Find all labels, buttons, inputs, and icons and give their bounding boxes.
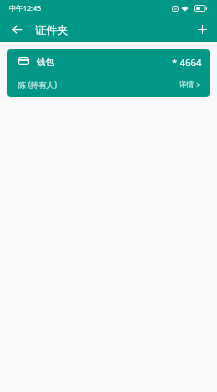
staticText: * 4664 [172, 56, 202, 69]
button[interactable]: Back [0, 17, 33, 42]
staticText: 证件夹 [35, 23, 68, 37]
button[interactable]: 详情 [179, 80, 200, 89]
button[interactable]: 钱包 [7, 49, 210, 97]
staticText: 钱包 [37, 57, 54, 68]
staticText: 陈 (持有人) [18, 79, 57, 90]
staticText: 详情 [179, 80, 194, 89]
button[interactable]: Add [190, 17, 215, 42]
staticText: 中午12:45 [9, 4, 41, 14]
